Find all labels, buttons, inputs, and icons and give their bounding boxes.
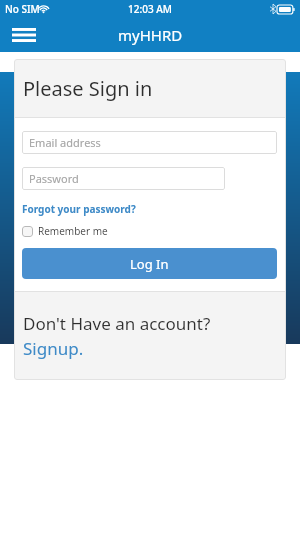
button[interactable]: Forgot your password? <box>22 202 136 216</box>
staticText: Password <box>29 171 79 186</box>
button[interactable]: Email address <box>22 131 277 154</box>
staticText: Log In <box>130 255 169 273</box>
staticText: Forgot your password? <box>22 202 136 216</box>
button[interactable]: Remember me <box>22 224 108 238</box>
staticText: Don't Have an account? <box>23 312 211 335</box>
button[interactable]: Password <box>22 167 225 190</box>
staticText: Remember me <box>38 224 108 238</box>
staticText: myHHRD <box>118 25 183 45</box>
button[interactable]: Open navigation menu <box>8 21 40 49</box>
button[interactable]: Signup. <box>23 337 84 360</box>
button[interactable]: Log In <box>22 248 277 279</box>
staticText: No SIM <box>5 2 40 16</box>
staticText: Please Sign in <box>23 75 153 102</box>
staticText: 12:03 AM <box>128 2 172 16</box>
staticText: Signup. <box>23 337 84 360</box>
staticText: Email address <box>29 135 101 150</box>
